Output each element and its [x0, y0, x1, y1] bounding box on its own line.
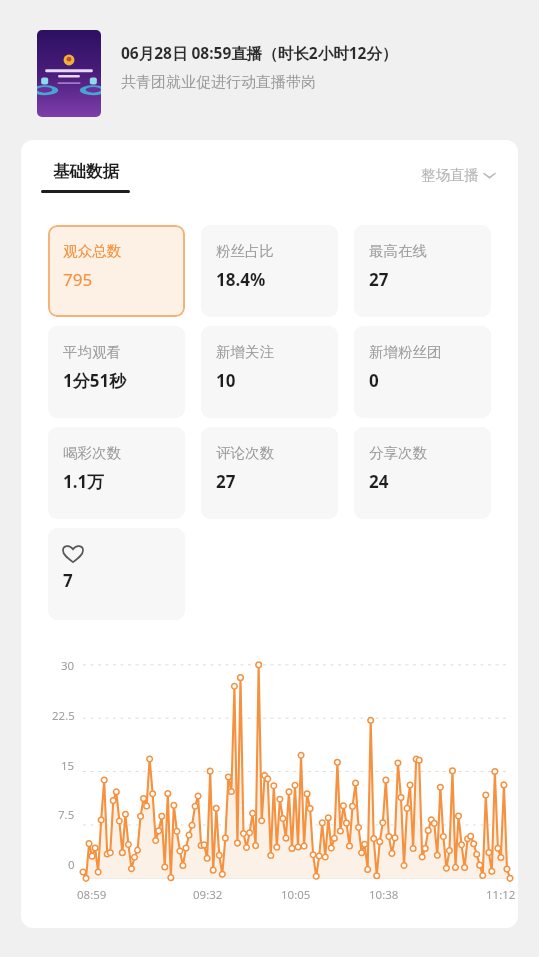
button[interactable]: 基础数据 [41, 161, 130, 193]
staticText: 基础数据 [53, 161, 119, 182]
staticText: 7 [63, 569, 73, 592]
button[interactable]: 观众总数 [48, 225, 185, 317]
staticText: 15 [61, 758, 75, 774]
staticText: 27 [369, 268, 389, 291]
staticText: 最高在线 [369, 242, 427, 260]
staticText: 22.5 [52, 708, 75, 724]
staticText: 1分51秒 [63, 369, 127, 392]
staticText: 30 [61, 658, 75, 674]
staticText: 10:38 [369, 887, 399, 903]
staticText: 喝彩次数 [63, 444, 121, 462]
staticText: 18.4% [216, 268, 266, 291]
staticText: 7.5 [58, 807, 75, 823]
button[interactable]: 最高在线 [354, 225, 491, 317]
staticText: 08:59 [77, 887, 107, 903]
button[interactable]: 喝彩次数 [48, 427, 185, 519]
staticText: 06月28日 08:59直播（时长2小时12分） [121, 42, 398, 63]
staticText: 0 [68, 857, 75, 873]
staticText: 观众总数 [63, 242, 121, 260]
staticText: 0 [369, 369, 379, 392]
staticText: 11:12 [486, 887, 516, 903]
staticText: 评论次数 [216, 444, 274, 462]
other: 点赞数 [63, 545, 83, 563]
button[interactable]: 直播封面 [37, 30, 521, 117]
button[interactable]: 新增关注 [201, 326, 338, 418]
staticText: 整场直播 [421, 166, 479, 184]
staticText: 27 [216, 470, 236, 493]
staticText: 10 [216, 369, 236, 392]
staticText: 09:32 [193, 887, 223, 903]
button[interactable]: 粉丝占比 [201, 225, 338, 317]
staticText: 新增关注 [216, 343, 274, 361]
button[interactable]: 平均观看 [48, 326, 185, 418]
staticText: 平均观看 [63, 343, 121, 361]
staticText: 795 [63, 268, 93, 291]
button[interactable]: 新增粉丝团 [354, 326, 491, 418]
staticText: 1.1万 [63, 470, 105, 493]
other: 直播封面 [37, 30, 101, 117]
staticText: 24 [369, 470, 389, 493]
staticText: 分享次数 [369, 444, 427, 462]
button[interactable]: 整场直播 [418, 163, 498, 187]
staticText: 粉丝占比 [216, 242, 274, 260]
staticText: 10:05 [281, 887, 311, 903]
button[interactable]: 分享次数 [354, 427, 491, 519]
button[interactable]: 点赞数 [48, 528, 185, 620]
staticText: 新增粉丝团 [369, 343, 442, 361]
staticText: 共青团就业促进行动直播带岗 [121, 73, 316, 92]
button[interactable]: 评论次数 [201, 427, 338, 519]
